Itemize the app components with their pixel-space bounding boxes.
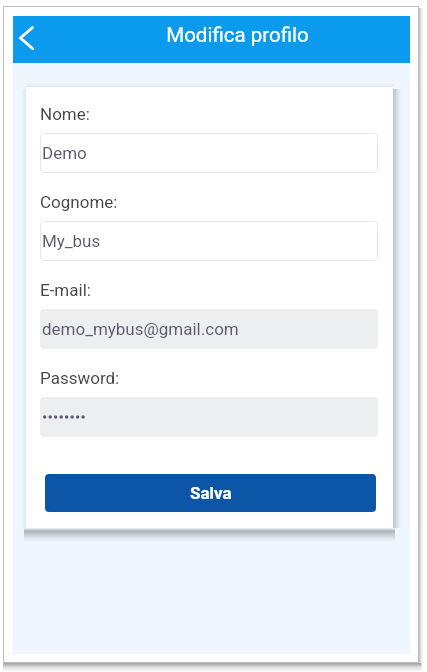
button[interactable]: Demo xyxy=(40,133,378,173)
staticText: Modifica profilo xyxy=(166,23,309,47)
staticText: Salva xyxy=(190,483,232,503)
staticText: E-mail: xyxy=(40,280,91,300)
button[interactable]: demo_mybus@gmail.com xyxy=(40,309,378,349)
button[interactable]: Salva xyxy=(45,474,376,512)
staticText: Cognome: xyxy=(40,192,118,212)
staticText: Password: xyxy=(40,368,120,388)
staticText: My_bus xyxy=(42,231,101,251)
button[interactable] xyxy=(40,397,378,437)
staticText: Demo xyxy=(42,143,87,163)
button[interactable]: Back xyxy=(13,18,47,62)
staticText: Nome: xyxy=(40,104,90,124)
staticText: demo_mybus@gmail.com xyxy=(42,319,239,339)
button[interactable]: My_bus xyxy=(40,221,378,261)
